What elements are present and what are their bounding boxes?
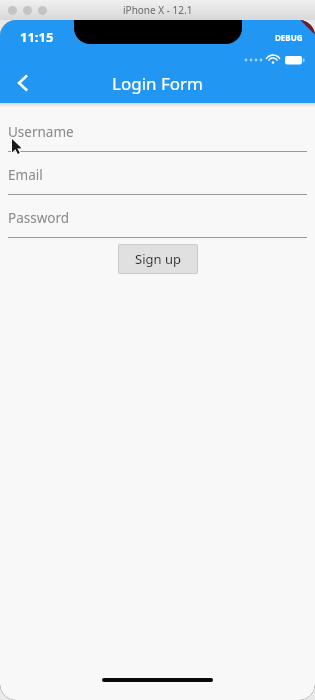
button[interactable]: Email — [8, 166, 307, 195]
staticText: DEBUG — [275, 32, 303, 43]
staticText: Email — [8, 166, 43, 184]
staticText: 11:15 — [20, 28, 54, 46]
staticText: iPhone X - 12.1 — [123, 3, 193, 17]
button[interactable]: Password — [8, 209, 307, 238]
staticText: Username — [8, 123, 74, 141]
button[interactable]: Back — [0, 63, 46, 103]
button[interactable]: Sign up — [118, 244, 198, 274]
staticText: Password — [8, 209, 70, 227]
staticText: Login Form — [112, 72, 203, 95]
button[interactable]: Username — [8, 123, 307, 152]
staticText: Sign up — [135, 250, 181, 268]
